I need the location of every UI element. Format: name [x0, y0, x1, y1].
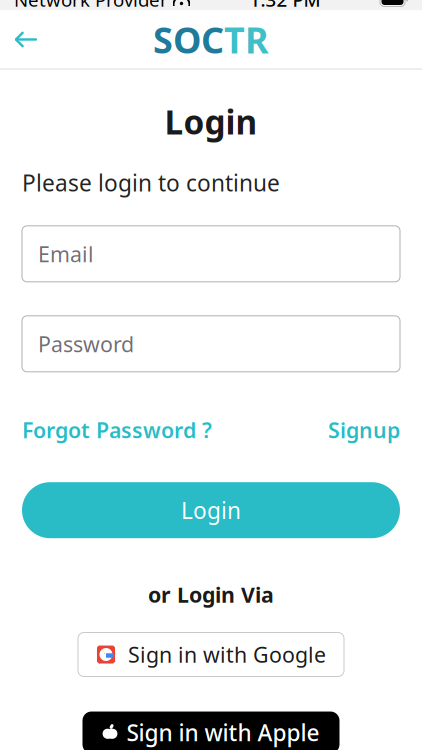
staticText: Please login to continue	[22, 168, 280, 198]
staticText: Sign in with Google	[128, 640, 326, 669]
staticText: Login	[181, 495, 241, 525]
staticText: Sign in with Apple	[126, 717, 319, 748]
button[interactable]: Sign in with Apple	[82, 711, 339, 750]
staticText: Email	[38, 240, 94, 268]
staticText: Signup	[328, 416, 400, 444]
button[interactable]: Signup	[328, 410, 400, 450]
staticText: TR	[224, 16, 269, 63]
button[interactable]: Forgot Password ?	[22, 410, 212, 450]
staticText: or Login Via	[148, 580, 274, 608]
staticText: Password	[38, 330, 134, 358]
staticText: Network Provider	[14, 0, 168, 12]
button[interactable]: Back	[0, 17, 52, 61]
button[interactable]: Login	[22, 482, 400, 538]
button[interactable]: Sign in with Google	[78, 632, 344, 676]
staticText: Login	[164, 99, 257, 144]
staticText: SOC	[153, 16, 224, 63]
staticText: Forgot Password ?	[22, 416, 212, 444]
staticText: 1:32 PM	[249, 0, 320, 12]
